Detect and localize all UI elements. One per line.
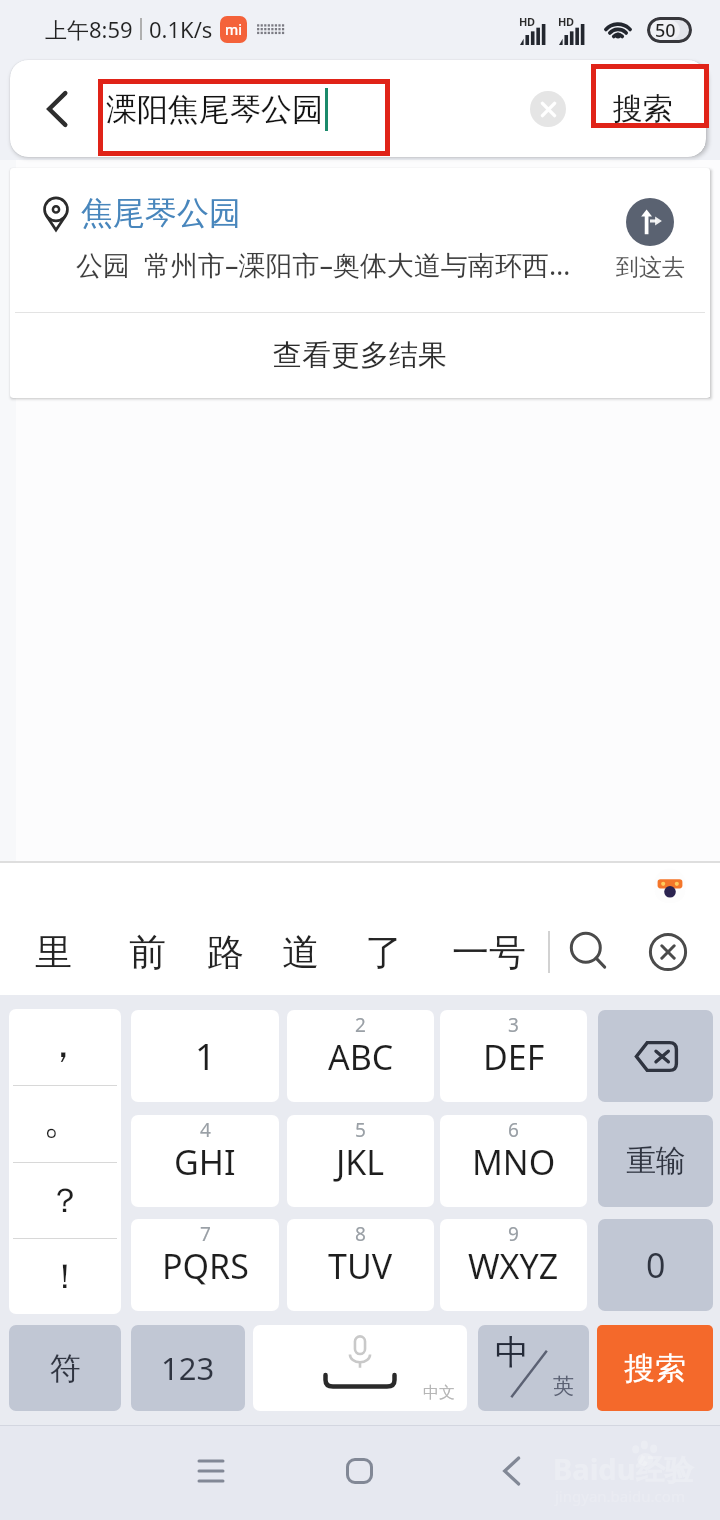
button[interactable]: Voice assistant [650, 866, 690, 906]
staticText: 到这去 [616, 253, 685, 282]
staticText: 溧阳焦尾琴公园 [106, 90, 323, 129]
staticText: 上午8:59 [45, 14, 133, 44]
button[interactable]: Clear text [530, 91, 566, 127]
staticText: 8 [355, 1221, 366, 1247]
button[interactable]: Hide keyboard [636, 916, 700, 988]
button[interactable]: 5 [287, 1115, 434, 1207]
staticText: 查看更多结果 [273, 337, 447, 374]
button[interactable]: 查看更多结果 [10, 313, 710, 398]
staticText: 符 [50, 1349, 81, 1388]
button[interactable]: 焦尾琴公园 [10, 168, 710, 312]
staticText: 1 [195, 1032, 216, 1081]
staticText: 50 [655, 18, 676, 43]
staticText: 搜索 [613, 90, 673, 128]
staticText: 公园 常州市–溧阳市–奥体大道与南环西… [76, 246, 571, 283]
staticText: 9 [508, 1221, 519, 1247]
button[interactable]: 搜索 [597, 1325, 713, 1411]
button[interactable]: 2 [287, 1010, 434, 1102]
staticText: 英 [553, 1373, 574, 1399]
staticText: 重输 [626, 1142, 686, 1180]
button[interactable]: 3 [440, 1010, 587, 1102]
button[interactable]: 8 [287, 1219, 434, 1311]
staticText: 0 [646, 1242, 666, 1288]
staticText: WXYZ [468, 1243, 559, 1289]
button[interactable]: Back [481, 1441, 541, 1501]
staticText: ， [43, 1018, 83, 1068]
staticText: mi [225, 20, 243, 39]
staticText: 123 [161, 1347, 215, 1389]
button[interactable]: Recent apps [181, 1441, 241, 1501]
staticText: 焦尾琴公园 [81, 193, 241, 233]
button[interactable]: 。 [9, 1085, 121, 1161]
button[interactable]: 路 [189, 916, 261, 988]
staticText: HD [519, 14, 535, 29]
button[interactable]: 一号 [439, 916, 539, 988]
button[interactable]: 重输 [598, 1115, 713, 1207]
button[interactable]: 123 [131, 1325, 245, 1411]
staticText: 6 [508, 1117, 519, 1143]
staticText: JKL [336, 1139, 385, 1185]
staticText: 里 [35, 929, 72, 976]
staticText: 搜索 [624, 1349, 686, 1388]
staticText: 中 [495, 1331, 529, 1374]
staticText: 中文 [423, 1383, 455, 1403]
button[interactable]: ！ [9, 1238, 121, 1314]
staticText: GHI [174, 1139, 236, 1185]
staticText: 2 [355, 1012, 366, 1038]
staticText: 前 [129, 929, 166, 976]
staticText: TUV [328, 1243, 393, 1289]
button[interactable]: Back [24, 60, 90, 157]
button[interactable]: 4 [131, 1115, 279, 1207]
button[interactable]: 了 [347, 916, 419, 988]
button[interactable]: 0 [598, 1219, 713, 1311]
button[interactable]: 1 [131, 1010, 279, 1102]
staticText: 。 [43, 1094, 83, 1144]
button[interactable]: Search [558, 916, 622, 988]
staticText: 道 [282, 929, 319, 976]
staticText: 4 [200, 1117, 211, 1143]
button[interactable]: ？ [9, 1162, 121, 1238]
button[interactable]: 9 [440, 1219, 587, 1311]
button[interactable]: Navigate here [604, 198, 696, 282]
button[interactable]: Home [329, 1441, 389, 1501]
button[interactable]: 前 [111, 916, 183, 988]
staticText: HD [558, 14, 574, 29]
staticText: 3 [508, 1012, 519, 1038]
staticText: DEF [483, 1034, 545, 1080]
button[interactable]: Backspace [598, 1010, 713, 1102]
button[interactable]: 符 [9, 1325, 121, 1411]
button[interactable]: 里 [17, 916, 89, 988]
staticText: 7 [200, 1221, 211, 1247]
button[interactable]: ， [9, 1009, 121, 1085]
staticText: ！ [48, 1255, 82, 1298]
staticText: ？ [48, 1179, 82, 1222]
staticText: PQRS [162, 1243, 249, 1289]
button[interactable]: 中 [478, 1325, 589, 1411]
button[interactable]: 6 [440, 1115, 587, 1207]
staticText: 路 [207, 929, 244, 976]
staticText: 一号 [452, 929, 526, 976]
button[interactable]: 道 [264, 916, 336, 988]
staticText: 5 [355, 1117, 366, 1143]
staticText: ABC [328, 1034, 394, 1080]
button[interactable]: 7 [131, 1219, 279, 1311]
button[interactable]: Space [253, 1325, 467, 1411]
staticText: 0.1K/s [149, 14, 213, 44]
staticText: 了 [365, 929, 402, 976]
staticText: MNO [472, 1139, 556, 1185]
button[interactable]: 搜索 [583, 69, 703, 149]
